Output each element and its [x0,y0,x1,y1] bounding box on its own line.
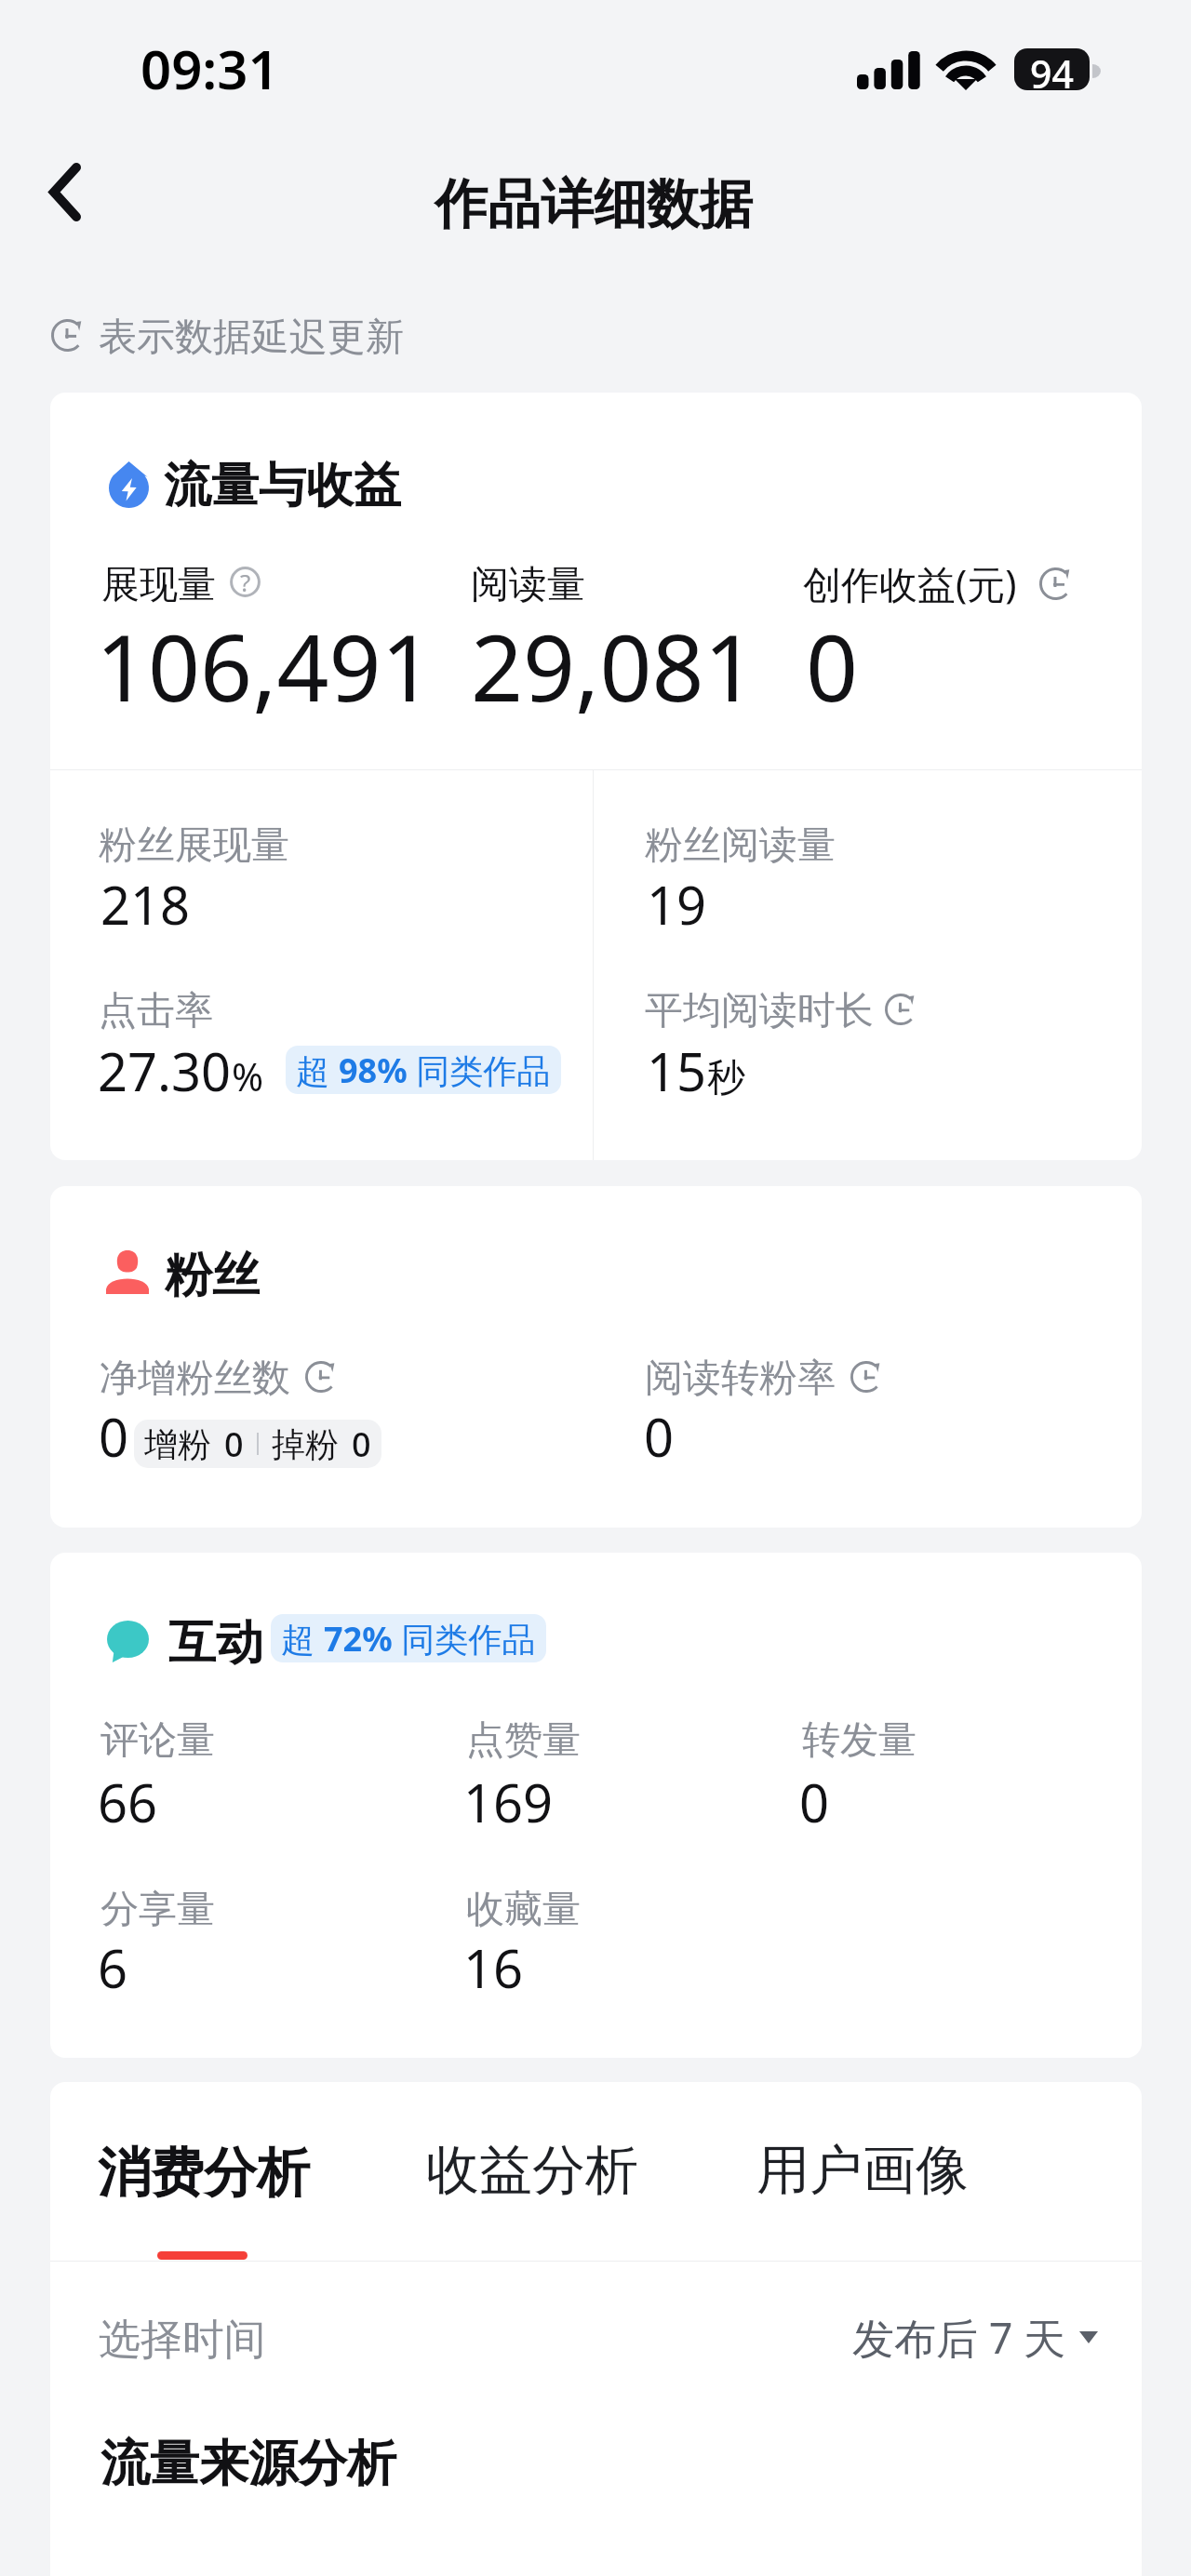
staticText: 收益分析 [426,2137,638,2204]
staticText: 点赞量 [466,1716,581,1765]
staticText: 选择时间 [99,2314,266,2367]
staticText: 0 [224,1421,244,1467]
staticText: 作品详细数据 [435,171,753,238]
staticText: 同类作品 [408,1048,551,1093]
staticText: 0 [352,1421,371,1467]
staticText: 阅读量 [471,561,585,609]
staticText: 0 [799,1767,830,1837]
staticText: 0 [644,1401,675,1472]
staticText: ? [240,566,251,596]
staticText: % [232,1050,264,1102]
staticText: 互动 [168,1613,263,1673]
staticText: 同类作品 [393,1616,536,1662]
staticText: 粉丝阅读量 [645,821,836,870]
staticText: 展现量 [101,561,216,609]
staticText: 创作收益(元) [803,557,1017,609]
staticText: 0 [806,604,859,727]
staticText: 秒 [707,1054,745,1102]
staticText: 用户画像 [756,2137,969,2204]
staticText: 收藏量 [466,1886,581,1934]
staticText: 19 [647,869,707,940]
staticText: 粉丝展现量 [99,821,289,870]
staticText: 阅读转粉率 [645,1355,836,1403]
staticText: 超 [281,1616,324,1662]
staticText: 15 [647,1035,707,1106]
staticText: 转发量 [802,1716,917,1765]
button[interactable]: 收益分析 [426,2137,640,2211]
staticText: 增粉 [144,1423,211,1465]
staticText: 分享量 [100,1886,215,1934]
staticText: 掉粉 [272,1423,339,1465]
staticText: 09:31 [141,32,279,105]
staticText: 超 [296,1048,339,1093]
staticText: 流量与收益 [164,456,401,515]
staticText: 粉丝 [165,1246,260,1305]
button[interactable]: 发布后 7 天 [834,2300,1104,2374]
staticText: 6 [98,1932,128,2003]
staticText: 94 [1030,48,1074,89]
staticText: 净增粉丝数 [100,1355,290,1403]
button[interactable]: What is impressions? [230,567,261,597]
staticText: 点击率 [99,987,213,1035]
staticText: 表示数据延迟更新 [99,314,404,362]
staticText: 平均阅读时长 [645,987,874,1035]
staticText: 16 [463,1932,524,2003]
staticText: 169 [463,1767,554,1837]
staticText: 评论量 [100,1716,215,1765]
button[interactable]: Back [20,147,110,236]
staticText: 72% [324,1616,393,1662]
staticText: 消费分析 [98,2140,310,2207]
staticText: 106,491 [96,604,434,727]
staticText: 发布后 7 天 [852,2309,1066,2366]
button[interactable]: 用户画像 [756,2137,970,2211]
staticText: 98% [339,1048,408,1093]
button[interactable]: 消费分析 [98,2140,312,2214]
staticText: 218 [100,869,191,940]
staticText: 27.30 [98,1035,232,1106]
staticText: 流量来源分析 [100,2433,396,2495]
staticText: 0 [99,1401,129,1472]
staticText: 29,081 [471,604,756,727]
staticText: 66 [98,1767,158,1837]
